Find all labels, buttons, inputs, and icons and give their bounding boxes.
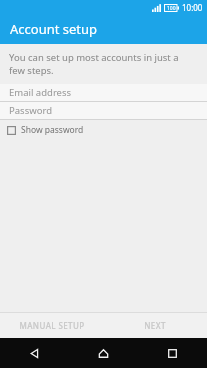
staticText: Password [9,104,52,117]
button[interactable]: NEXT [103,313,207,338]
staticText: Email address [9,86,72,99]
staticText: 100 [167,5,176,12]
button[interactable]: Back [0,338,69,368]
staticText: 10:00 [182,2,203,13]
button[interactable]: Password [0,102,207,119]
staticText: NEXT [144,320,166,331]
button[interactable]: MANUAL SETUP [0,313,103,338]
button[interactable]: Recent apps [138,338,207,368]
staticText: MANUAL SETUP [19,320,85,331]
button[interactable]: Email address [0,84,207,101]
button[interactable]: Home [69,338,138,368]
button[interactable]: Show password [0,120,207,140]
staticText: Account setup [10,20,98,38]
staticText: Show password [21,124,84,136]
staticText: You can set up most accounts in just a f… [9,51,179,77]
